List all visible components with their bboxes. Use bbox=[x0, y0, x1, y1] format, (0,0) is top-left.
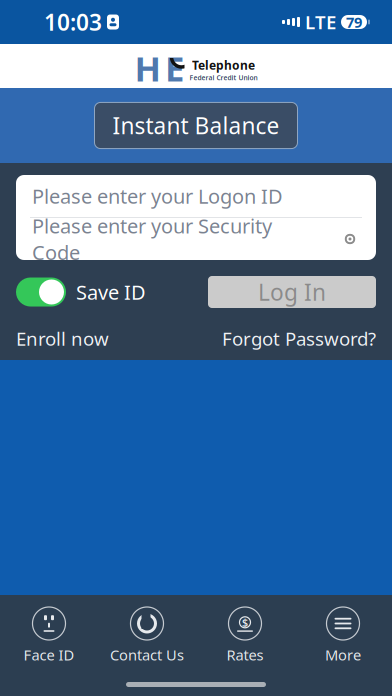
button[interactable]: Please enter your Logon ID bbox=[16, 175, 376, 217]
staticText: Please enter your Security Code bbox=[32, 212, 272, 265]
staticText: E bbox=[165, 45, 184, 91]
staticText: Save ID bbox=[76, 279, 146, 305]
staticText: Log In bbox=[258, 277, 326, 307]
staticText: Please enter your Logon ID bbox=[32, 183, 283, 209]
staticText: Telephone bbox=[192, 57, 255, 73]
button[interactable]: Save ID bbox=[16, 277, 146, 306]
button[interactable]: Forgot Password? bbox=[222, 326, 376, 351]
button[interactable]: Log In bbox=[208, 276, 376, 308]
button[interactable]: Please enter your Security Code bbox=[16, 218, 376, 260]
staticText: Forgot Password? bbox=[222, 326, 376, 351]
staticText: Rates bbox=[226, 645, 263, 664]
staticText: 10:03 bbox=[44, 7, 102, 37]
staticText: Enroll now bbox=[16, 326, 109, 351]
staticText: Contact Us bbox=[110, 645, 184, 664]
staticText: $ bbox=[242, 615, 248, 629]
staticText: More bbox=[325, 645, 361, 664]
button[interactable]: Enroll now bbox=[16, 326, 109, 351]
button[interactable]: Face ID bbox=[0, 607, 98, 664]
staticText: H bbox=[134, 45, 161, 91]
staticText: Federal Credit Union bbox=[189, 73, 257, 82]
button[interactable]: Instant Balance bbox=[94, 102, 297, 148]
staticText: 79 bbox=[346, 12, 362, 32]
button[interactable]: Rates bbox=[196, 607, 294, 664]
button[interactable]: More bbox=[294, 607, 392, 664]
staticText: Instant Balance bbox=[112, 110, 279, 140]
staticText: Face ID bbox=[23, 645, 74, 664]
button[interactable]: Contact Us bbox=[98, 607, 196, 664]
staticText: LTE bbox=[305, 10, 336, 34]
